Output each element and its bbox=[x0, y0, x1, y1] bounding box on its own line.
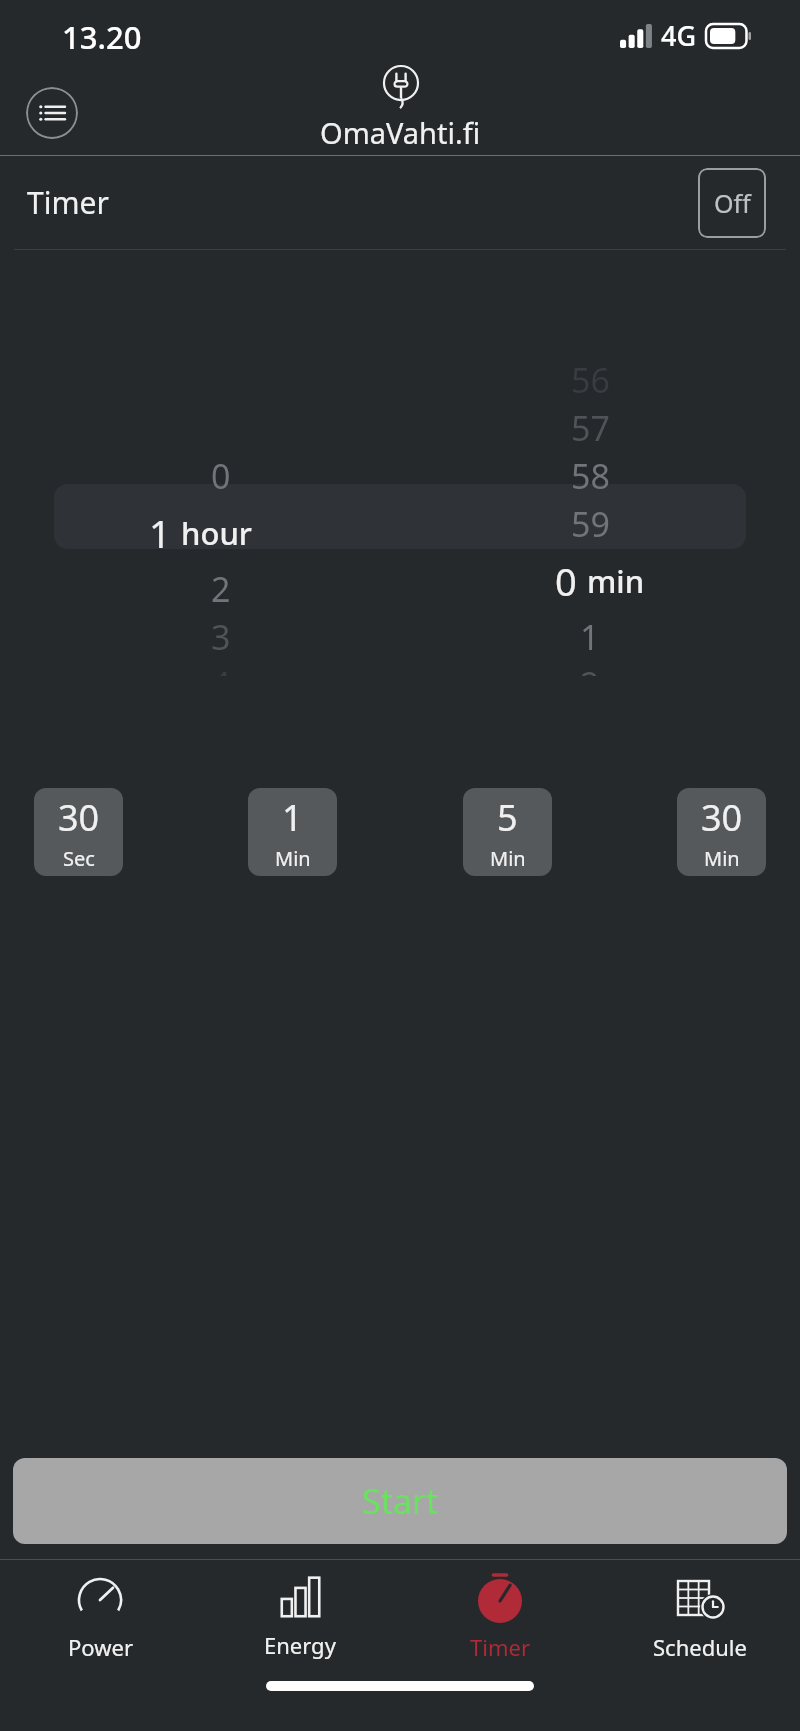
staticText: Min bbox=[704, 845, 740, 872]
staticText: 30 bbox=[701, 793, 743, 842]
staticText: 1 bbox=[149, 507, 171, 559]
staticText: Energy bbox=[264, 1630, 336, 1660]
staticText: min bbox=[587, 560, 645, 602]
staticText: 4G bbox=[661, 17, 697, 54]
staticText: 1 bbox=[580, 614, 600, 660]
staticText: Schedule bbox=[653, 1632, 747, 1662]
staticText: 59 bbox=[571, 501, 610, 547]
staticText: 3 bbox=[211, 614, 231, 660]
staticText: 4 bbox=[211, 661, 231, 676]
staticText: 30 bbox=[58, 793, 100, 842]
staticText: Min bbox=[490, 845, 526, 872]
button[interactable]: 5 bbox=[463, 788, 552, 876]
button[interactable]: Energy bbox=[200, 1560, 400, 1675]
button[interactable]: Start bbox=[13, 1458, 787, 1544]
staticText: Start bbox=[362, 1478, 439, 1524]
staticText: 2 bbox=[211, 566, 231, 612]
staticText: hour bbox=[181, 512, 252, 554]
staticText: 1 bbox=[282, 793, 303, 842]
button[interactable]: Menu bbox=[26, 87, 78, 139]
staticText: 56 bbox=[571, 357, 610, 403]
button[interactable]: 30 bbox=[677, 788, 766, 876]
button[interactable]: Schedule bbox=[600, 1560, 800, 1675]
staticText: 13.20 bbox=[62, 16, 142, 58]
staticText: 5 bbox=[497, 793, 518, 842]
staticText: 0 bbox=[555, 555, 577, 607]
staticText: 2 bbox=[580, 661, 600, 676]
staticText: 0 bbox=[211, 453, 231, 499]
staticText: 57 bbox=[571, 405, 610, 451]
button[interactable]: Timer bbox=[400, 1560, 600, 1675]
button[interactable]: Off bbox=[698, 168, 766, 238]
staticText: Timer bbox=[470, 1632, 530, 1662]
button[interactable]: 30 bbox=[34, 788, 123, 876]
staticText: Off bbox=[714, 186, 751, 220]
staticText: Sec bbox=[63, 845, 95, 872]
staticText: Power bbox=[68, 1632, 133, 1662]
button[interactable]: Power bbox=[0, 1560, 200, 1675]
staticText: 58 bbox=[571, 453, 610, 499]
staticText: Min bbox=[275, 845, 311, 872]
staticText: OmaVahti.fi bbox=[320, 113, 481, 151]
staticText: Timer bbox=[27, 182, 109, 223]
button[interactable]: 1 bbox=[248, 788, 337, 876]
